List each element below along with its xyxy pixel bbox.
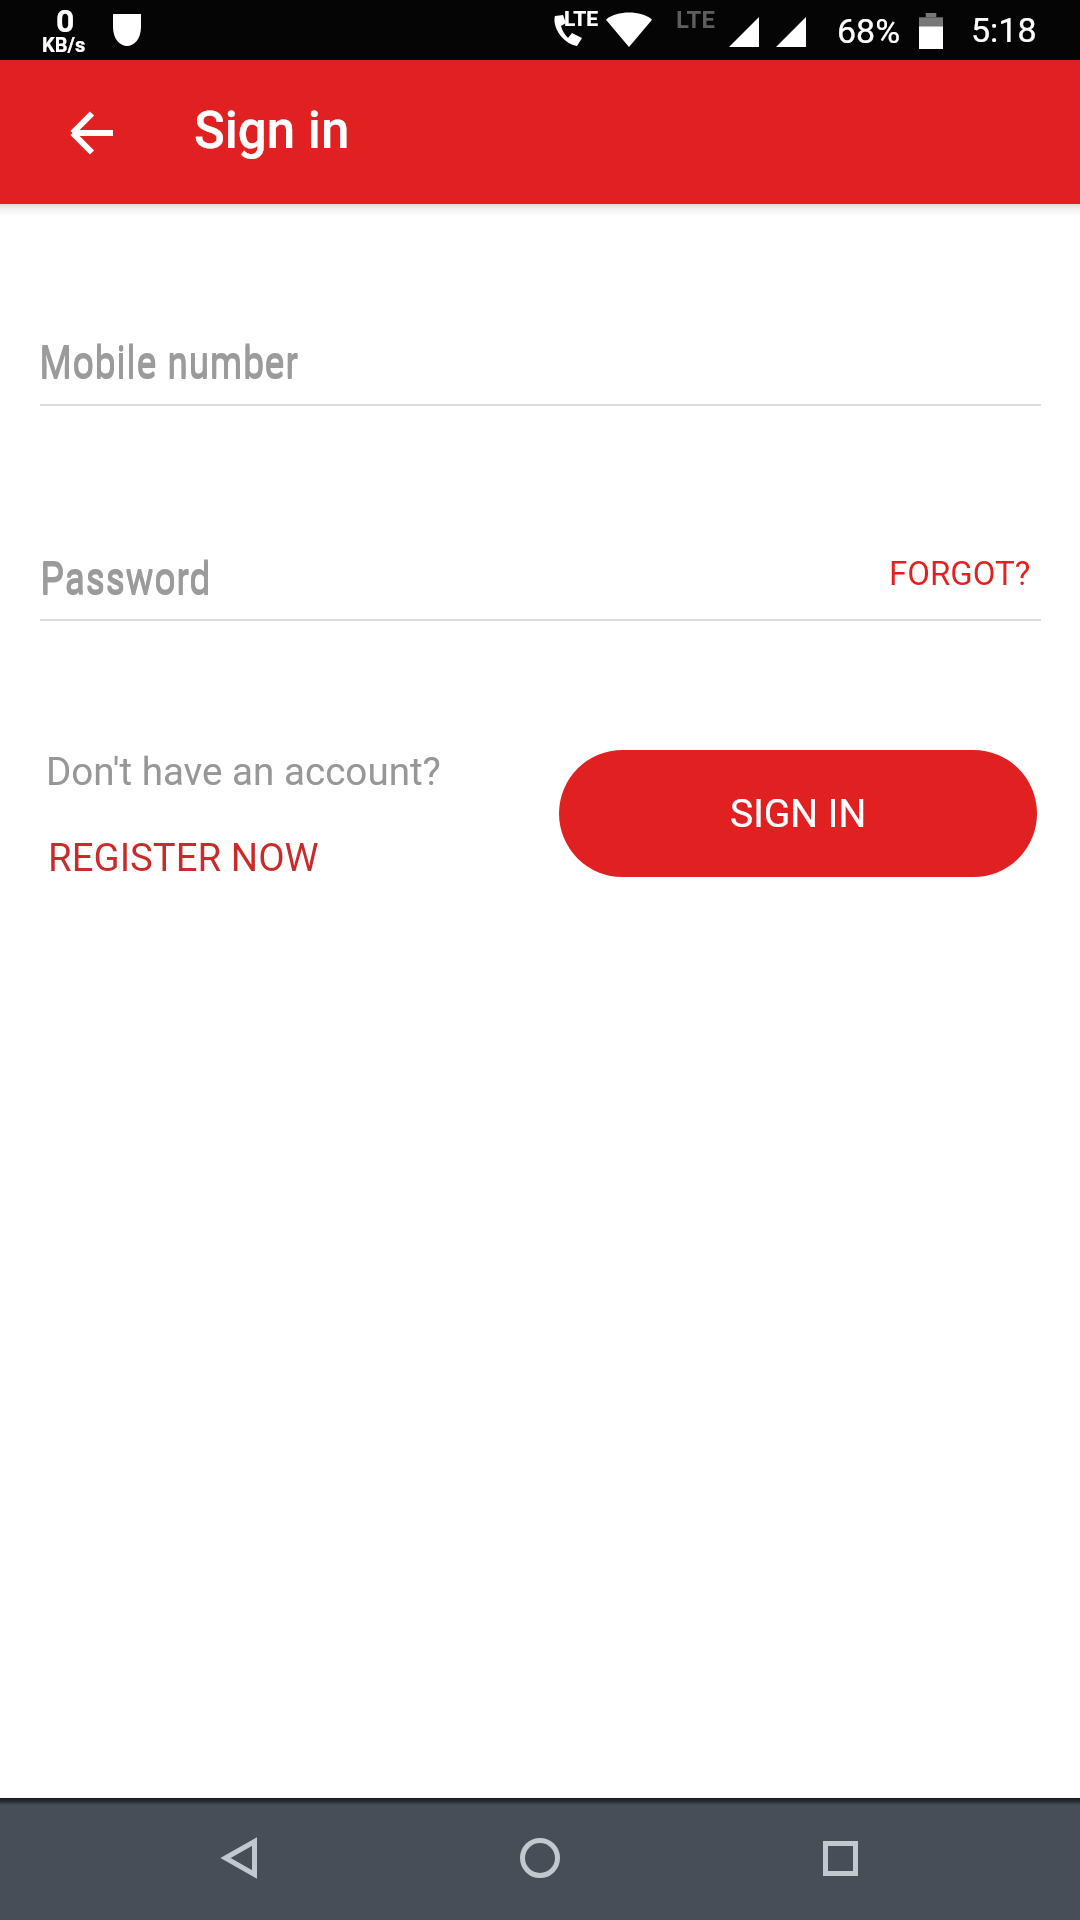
button[interactable]: REGISTER NOW xyxy=(28,805,339,910)
staticText: SIGN IN xyxy=(730,791,867,837)
staticText: Password xyxy=(40,552,211,604)
button[interactable]: Back xyxy=(46,87,136,177)
staticText: 5:18 xyxy=(971,10,1037,50)
button[interactable]: Back xyxy=(150,1798,330,1920)
staticText: Password xyxy=(40,554,211,606)
staticText: REGISTER NOW xyxy=(48,835,319,880)
staticText: Mobile number xyxy=(39,336,299,388)
staticText: FORGOT? xyxy=(889,554,1031,593)
staticText: Don't have an account? xyxy=(46,749,441,794)
staticText: 0 xyxy=(56,2,75,40)
button[interactable]: FORGOT? xyxy=(869,536,1051,611)
staticText: LTE xyxy=(676,6,715,34)
staticText: Sign in xyxy=(194,101,350,161)
button[interactable]: Home xyxy=(450,1798,630,1920)
staticText: Mobile number xyxy=(39,338,299,390)
button[interactable]: SIGN IN xyxy=(559,750,1037,877)
staticText: KB/s xyxy=(42,33,86,56)
staticText: 68% xyxy=(837,11,901,51)
button[interactable]: Recent apps xyxy=(750,1798,930,1920)
staticText: LTE xyxy=(564,7,599,32)
